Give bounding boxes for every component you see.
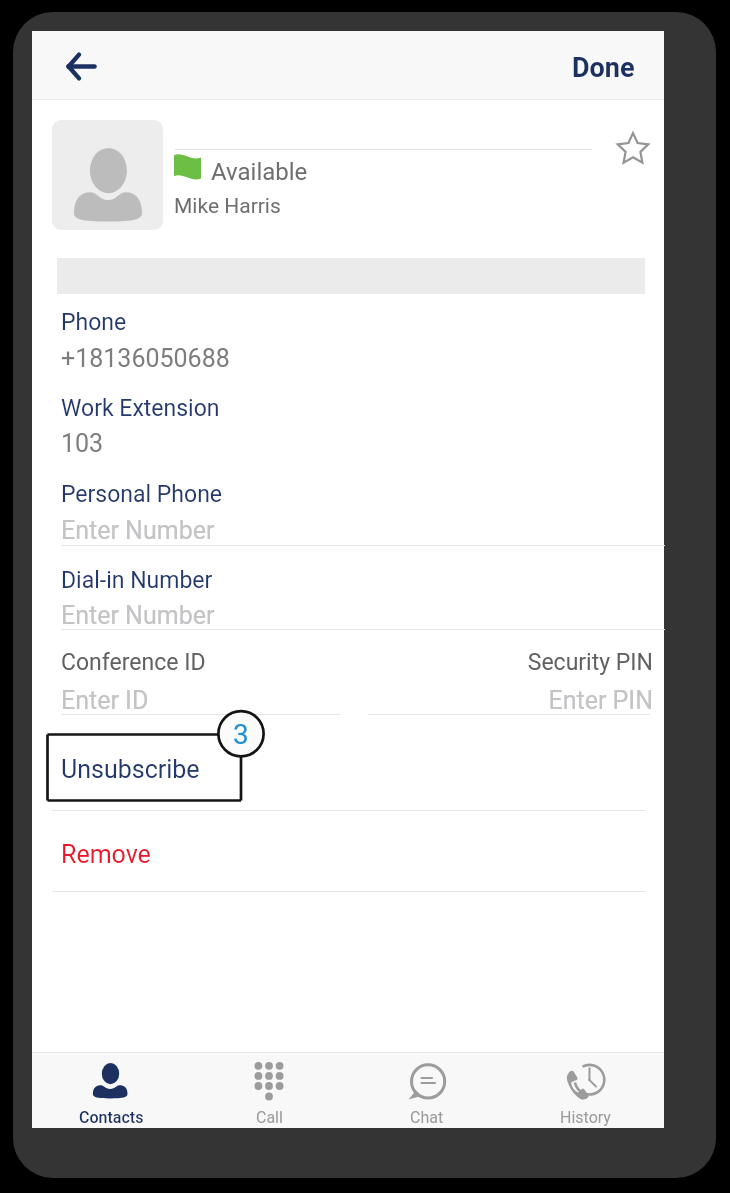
staticText: 3 bbox=[233, 718, 249, 751]
staticText: Personal Phone bbox=[61, 481, 223, 508]
button[interactable]: Contacts bbox=[32, 1053, 190, 1128]
button[interactable]: Back bbox=[52, 37, 110, 95]
button[interactable]: Unsubscribe bbox=[32, 743, 664, 810]
button[interactable]: Contact photo bbox=[52, 120, 163, 230]
staticText: Enter PIN bbox=[370, 686, 653, 715]
staticText: 103 bbox=[61, 429, 104, 458]
staticText: History bbox=[560, 1108, 611, 1127]
button[interactable]: Call bbox=[190, 1053, 348, 1128]
button[interactable]: History bbox=[506, 1053, 664, 1128]
button[interactable]: Done bbox=[556, 42, 650, 94]
button[interactable]: Remove bbox=[32, 827, 664, 891]
staticText: Enter ID bbox=[61, 686, 149, 715]
staticText: Remove bbox=[61, 840, 151, 869]
staticText: Chat bbox=[410, 1108, 444, 1127]
staticText: Security PIN bbox=[370, 649, 653, 676]
staticText: Call bbox=[256, 1108, 283, 1127]
staticText: +18136050688 bbox=[61, 344, 230, 373]
staticText: Conference ID bbox=[61, 649, 206, 676]
staticText: Dial-in Number bbox=[61, 567, 213, 594]
staticText: Unsubscribe bbox=[61, 755, 200, 784]
staticText: Work Extension bbox=[61, 395, 220, 422]
staticText: Enter Number bbox=[61, 601, 215, 630]
staticText: Available bbox=[211, 158, 308, 186]
staticText: Mike Harris bbox=[174, 194, 281, 219]
staticText: Contacts bbox=[79, 1108, 144, 1127]
staticText: Enter Number bbox=[61, 516, 215, 545]
button[interactable]: Favorite bbox=[607, 122, 659, 174]
staticText: Done bbox=[572, 52, 635, 84]
button[interactable]: Chat bbox=[348, 1053, 506, 1128]
staticText: Phone bbox=[61, 309, 127, 336]
